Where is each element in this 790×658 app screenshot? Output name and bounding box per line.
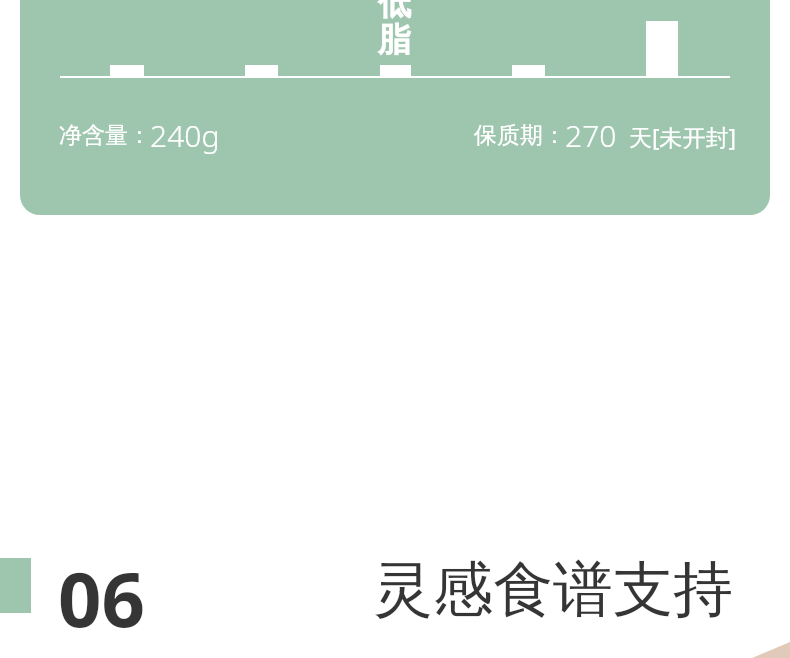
other: Decoration — [0, 0, 790, 658]
staticText: 净含量： — [59, 121, 151, 150]
staticText: 270 — [565, 115, 617, 156]
staticText: 低 脂 — [378, 0, 411, 61]
button[interactable]: 06 — [58, 546, 145, 650]
button[interactable] — [20, 0, 770, 215]
staticText: 天[未开封] — [629, 121, 737, 152]
staticText: 240g — [150, 115, 220, 156]
button[interactable]: 灵感食谱支持 — [373, 552, 733, 628]
staticText: 保质期： — [474, 121, 566, 150]
